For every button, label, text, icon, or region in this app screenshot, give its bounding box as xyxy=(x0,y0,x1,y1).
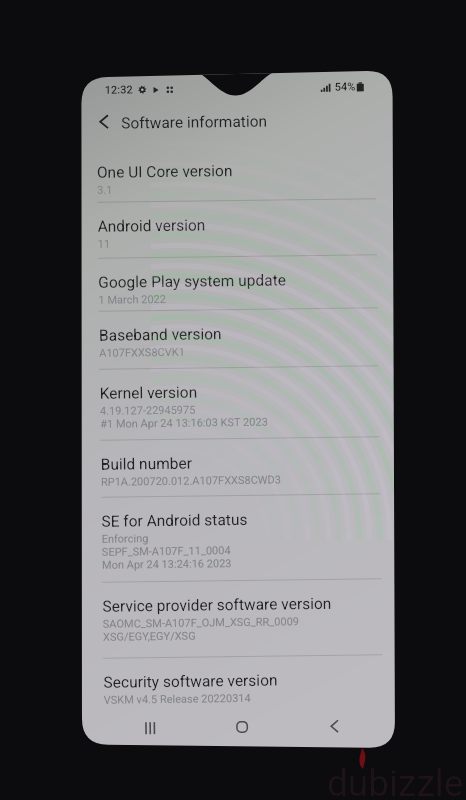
staticText: 11 xyxy=(98,238,111,251)
button[interactable] xyxy=(81,202,393,269)
button[interactable] xyxy=(82,497,395,590)
button[interactable] xyxy=(81,311,394,378)
staticText: dubizzle xyxy=(327,762,464,800)
staticText: 4.19.127-22945975 #1 Mon Apr 24 13:16:03… xyxy=(100,403,268,431)
button[interactable]: Back xyxy=(81,94,391,142)
button[interactable] xyxy=(83,582,395,662)
button[interactable] xyxy=(84,658,395,725)
staticText: 1 March 2022 xyxy=(98,293,167,307)
staticText: 54% xyxy=(335,80,356,94)
staticText: 3.1 xyxy=(97,184,113,197)
staticText: Google Play system update xyxy=(98,271,286,292)
staticText: Baseband version xyxy=(99,325,222,345)
staticText: Build number xyxy=(101,455,193,474)
staticText: One UI Core version xyxy=(97,162,233,182)
staticText: Service provider software version xyxy=(102,595,332,616)
button[interactable] xyxy=(81,258,394,325)
staticText: 12:32 xyxy=(105,83,133,97)
staticText: SAOMC_SM-A107F_OJM_XSG_RR_0009 XSG/EGY,E… xyxy=(103,615,300,644)
staticText: Enforcing SEPF_SM-A107F_11_0004 Mon Apr … xyxy=(102,531,232,572)
button[interactable] xyxy=(81,148,392,215)
button[interactable]: Back xyxy=(93,111,115,133)
staticText: Kernel version xyxy=(100,383,198,403)
button[interactable] xyxy=(81,369,395,449)
staticText: Security software version xyxy=(103,671,278,692)
staticText: VSKM v4.5 Release 20220314 xyxy=(104,692,251,707)
staticText: SE for Android status xyxy=(101,511,248,531)
button[interactable]: Home xyxy=(195,712,288,742)
staticText: Android version xyxy=(97,216,206,236)
staticText: A107FXXS8CVK1 xyxy=(99,346,185,360)
button[interactable] xyxy=(81,440,395,507)
staticText: Software information xyxy=(121,113,267,132)
button[interactable]: Recent apps xyxy=(103,714,195,743)
button[interactable]: Back xyxy=(288,711,381,740)
staticText: RP1A.200720.012.A107FXXS8CWD3 xyxy=(101,473,282,489)
